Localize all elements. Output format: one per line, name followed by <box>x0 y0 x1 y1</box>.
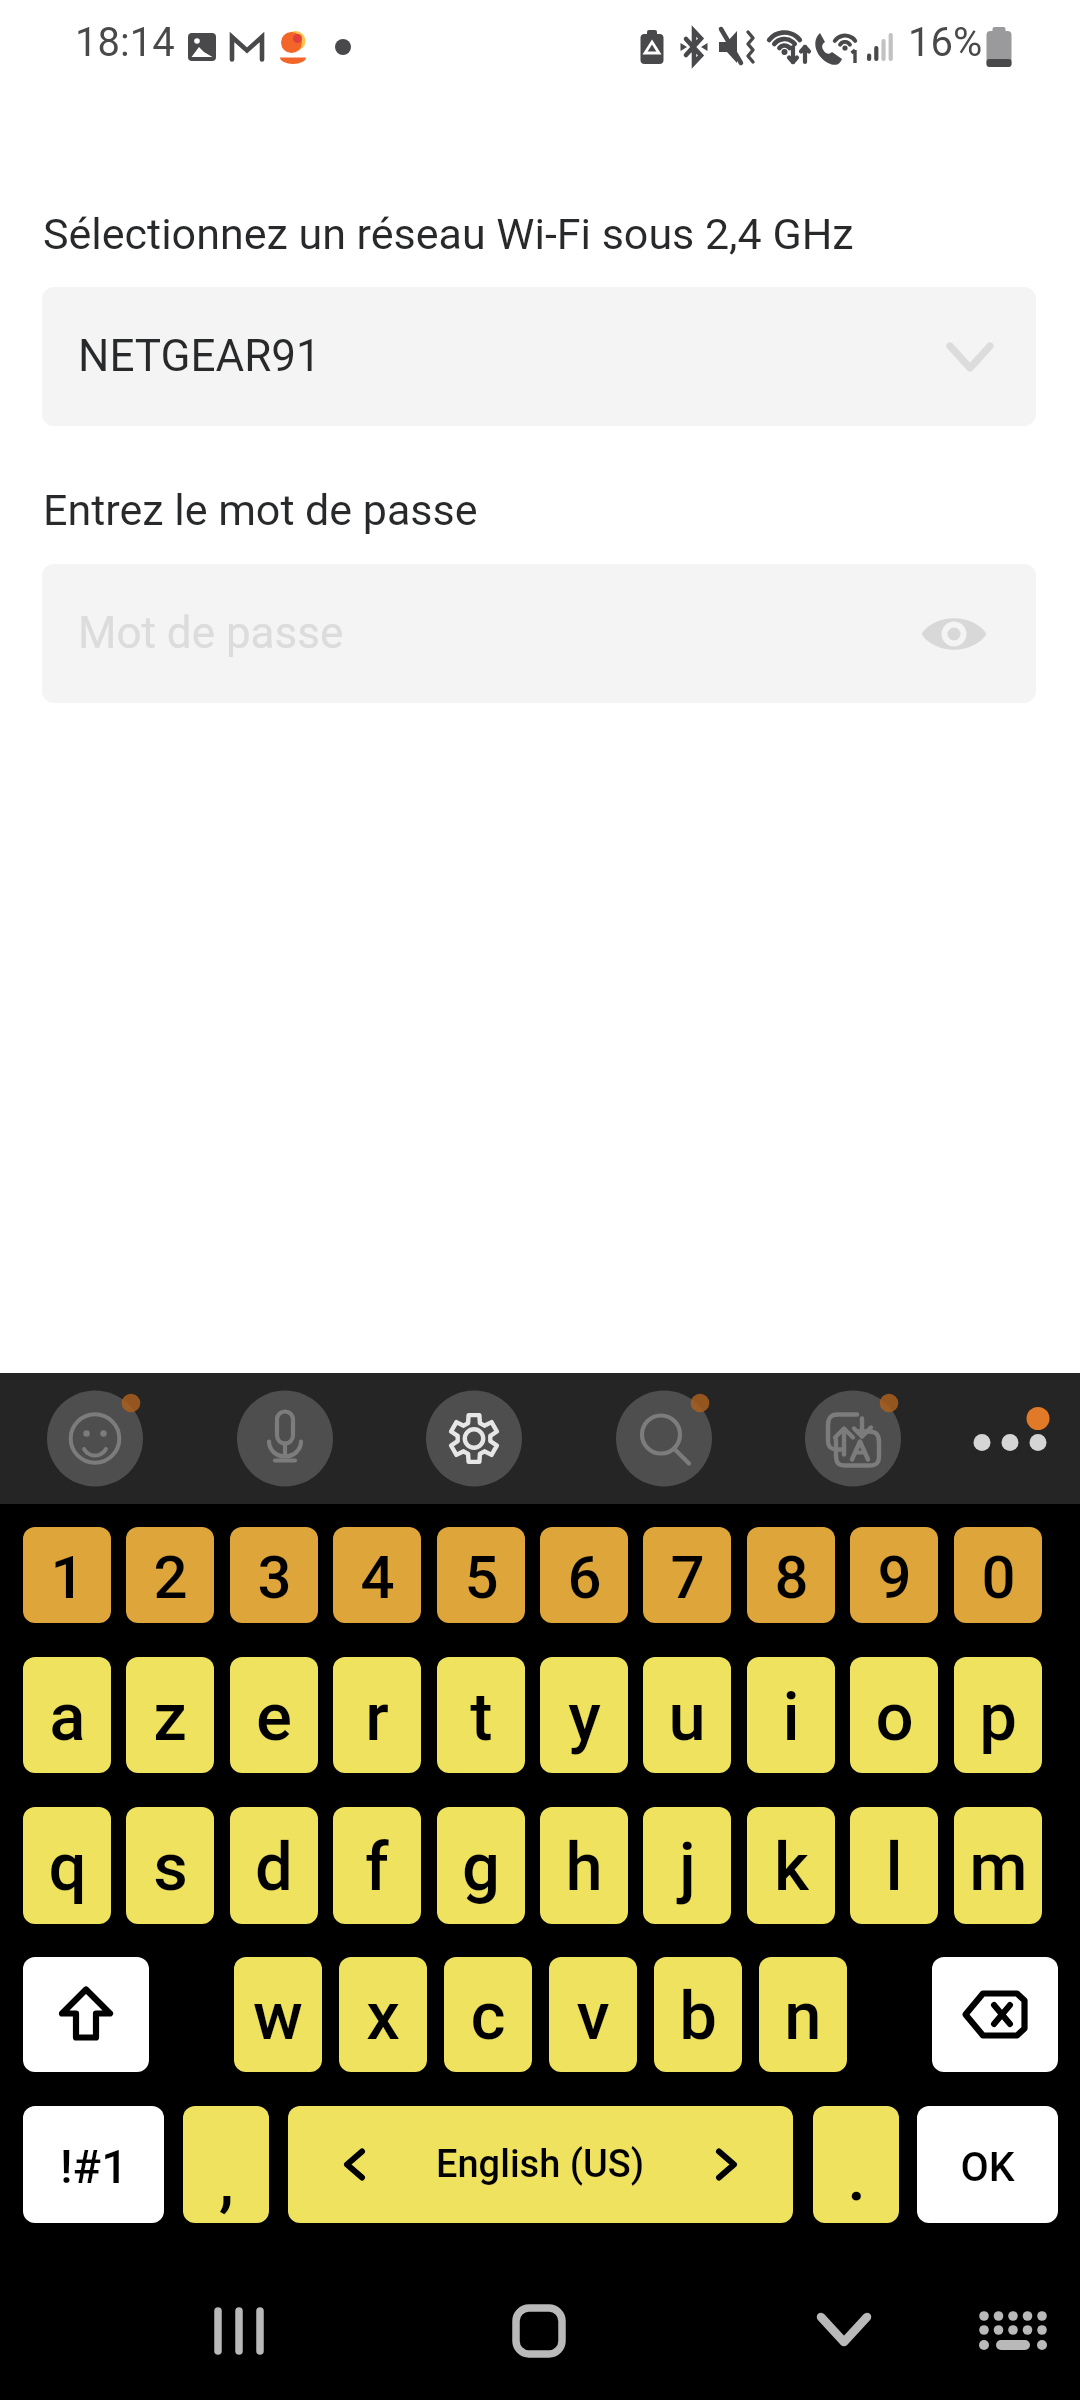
staticText: h <box>565 1828 603 1907</box>
button[interactable]: Ouvrir la liste des réseaux <box>935 322 1005 392</box>
button[interactable]: OK <box>917 2106 1058 2223</box>
staticText: 16% <box>908 19 983 66</box>
button[interactable]: y <box>540 1657 628 1773</box>
staticText: f <box>365 1828 389 1907</box>
button[interactable]: NETGEAR91 <box>42 287 1036 426</box>
button[interactable]: 2 <box>126 1527 214 1623</box>
staticText: d <box>255 1828 293 1907</box>
button[interactable]: i <box>747 1657 835 1773</box>
staticText: c <box>470 1977 506 2056</box>
staticText: 3 <box>257 1542 292 1612</box>
button[interactable]: 0 <box>954 1527 1042 1623</box>
staticText: 1 <box>50 1542 85 1612</box>
staticText: 18:14 <box>75 19 175 66</box>
button[interactable]: 7 <box>643 1527 731 1623</box>
staticText: English (US) <box>436 2142 645 2187</box>
button[interactable]: !#1 <box>23 2106 164 2223</box>
button[interactable]: 9 <box>850 1527 938 1623</box>
button[interactable]: h <box>540 1807 628 1924</box>
button[interactable]: Retour <box>765 2264 925 2384</box>
staticText: l <box>885 1828 903 1907</box>
staticText: o <box>875 1678 914 1757</box>
staticText: Entrez le mot de passe <box>43 485 478 535</box>
button[interactable]: g <box>437 1807 525 1924</box>
button[interactable]: e <box>230 1657 318 1773</box>
staticText: 0 <box>981 1542 1016 1612</box>
button[interactable]: Voix <box>237 1391 333 1487</box>
button[interactable]: f <box>333 1807 421 1924</box>
button[interactable]: Mot de passe <box>42 564 1036 703</box>
staticText: i <box>782 1678 800 1757</box>
button[interactable]: Afficher le mot de passe <box>911 591 997 677</box>
button[interactable]: 5 <box>437 1527 525 1623</box>
button[interactable]: j <box>643 1807 731 1924</box>
staticText: q <box>48 1828 87 1907</box>
staticText: 6 <box>567 1542 602 1612</box>
button[interactable]: Majuscule <box>23 1957 149 2072</box>
staticText: u <box>668 1678 706 1757</box>
button[interactable]: Emoji <box>47 1391 143 1487</box>
button[interactable]: Recherche <box>616 1391 712 1487</box>
button[interactable]: 8 <box>747 1527 835 1623</box>
button[interactable]: w <box>234 1957 322 2072</box>
staticText: 2 <box>153 1542 188 1612</box>
staticText: v <box>576 1977 610 2056</box>
button[interactable]: m <box>954 1807 1042 1924</box>
button[interactable]: . <box>813 2106 899 2223</box>
button[interactable]: , <box>183 2106 269 2223</box>
staticText: 8 <box>774 1542 809 1612</box>
button[interactable]: r <box>333 1657 421 1773</box>
button[interactable]: v <box>549 1957 637 2072</box>
button[interactable]: Espace <box>288 2106 793 2223</box>
staticText: r <box>365 1678 389 1757</box>
button[interactable]: z <box>126 1657 214 1773</box>
staticText: 9 <box>877 1542 912 1612</box>
button[interactable]: p <box>954 1657 1042 1773</box>
button[interactable]: x <box>339 1957 427 2072</box>
staticText: 5 <box>464 1542 499 1612</box>
staticText: . <box>847 2138 866 2217</box>
button[interactable]: 6 <box>540 1527 628 1623</box>
button[interactable]: t <box>437 1657 525 1773</box>
button[interactable]: Effacer <box>932 1957 1058 2072</box>
staticText: n <box>784 1977 822 2056</box>
staticText: , <box>219 2142 234 2221</box>
button[interactable]: s <box>126 1807 214 1924</box>
staticText: Sélectionnez un réseau Wi-Fi sous 2,4 GH… <box>43 209 854 259</box>
button[interactable]: k <box>747 1807 835 1924</box>
staticText: t <box>470 1678 493 1757</box>
button[interactable]: a <box>23 1657 111 1773</box>
staticText: 4 <box>360 1542 395 1612</box>
staticText: k <box>774 1828 809 1907</box>
button[interactable]: l <box>850 1807 938 1924</box>
button[interactable]: b <box>654 1957 742 2072</box>
staticText: p <box>979 1678 1017 1757</box>
button[interactable]: Paramètres <box>426 1391 522 1487</box>
staticText: NETGEAR91 <box>78 330 321 382</box>
button[interactable]: Accueil <box>455 2264 615 2384</box>
button[interactable]: Applications récentes <box>160 2264 320 2384</box>
button[interactable]: c <box>444 1957 532 2072</box>
button[interactable]: n <box>759 1957 847 2072</box>
staticText: m <box>969 1828 1028 1907</box>
button[interactable]: 3 <box>230 1527 318 1623</box>
staticText: y <box>568 1678 601 1757</box>
staticText: e <box>256 1678 292 1757</box>
staticText: Mot de passe <box>78 607 344 659</box>
button[interactable]: Plus d'options <box>960 1391 1060 1487</box>
staticText: z <box>153 1678 187 1757</box>
staticText: !#1 <box>60 2139 128 2194</box>
button[interactable]: o <box>850 1657 938 1773</box>
staticText: OK <box>960 2143 1015 2191</box>
button[interactable]: 1 <box>23 1527 111 1623</box>
staticText: s <box>153 1828 188 1907</box>
staticText: w <box>253 1977 303 2056</box>
staticText: 7 <box>670 1542 705 1612</box>
button[interactable]: q <box>23 1807 111 1924</box>
button[interactable]: Clavier <box>945 2264 1080 2384</box>
staticText: a <box>49 1678 86 1757</box>
button[interactable]: Traduire <box>805 1391 901 1487</box>
button[interactable]: 4 <box>333 1527 421 1623</box>
button[interactable]: u <box>643 1657 731 1773</box>
button[interactable]: d <box>230 1807 318 1924</box>
